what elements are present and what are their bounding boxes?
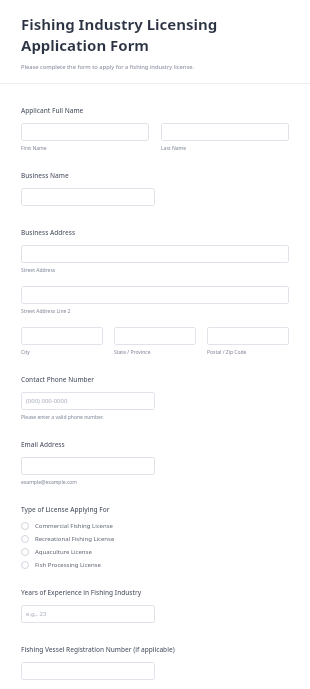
staticText: Fish Processing License — [35, 561, 101, 569]
staticText: Postal / Zip Code — [207, 349, 247, 356]
button[interactable]: (000) 000-0000 — [21, 392, 155, 410]
button[interactable]: Commercial Fishing License — [21, 519, 289, 532]
staticText: Type of License Applying For — [21, 505, 110, 514]
staticText: Email Address — [21, 440, 65, 449]
button[interactable] — [21, 286, 289, 304]
staticText: Street Address — [21, 267, 56, 274]
staticText: Aquaculture License — [35, 548, 92, 556]
staticText: City — [21, 349, 30, 356]
staticText: e.g., 23 — [26, 610, 47, 618]
staticText: Fishing Vessel Registration Number (if a… — [21, 645, 175, 654]
staticText: Commercial Fishing License — [35, 522, 113, 530]
staticText: Applicant Full Name — [21, 106, 84, 115]
staticText: Fishing Industry Licensing Application F… — [21, 14, 289, 56]
staticText: State / Province — [114, 349, 151, 356]
button[interactable]: Fish Processing License — [21, 558, 289, 571]
staticText: Business Name — [21, 171, 69, 180]
button[interactable] — [114, 327, 196, 345]
staticText: Recreational Fishing License — [35, 535, 115, 543]
staticText: Last Name — [161, 145, 187, 152]
button[interactable]: e.g., 23 — [21, 605, 155, 623]
staticText: example@example.com — [21, 479, 77, 486]
staticText: First Name — [21, 145, 47, 152]
button[interactable] — [161, 123, 289, 141]
staticText: Please enter a valid phone number. — [21, 414, 104, 421]
button[interactable] — [21, 327, 103, 345]
staticText: (000) 000-0000 — [26, 397, 68, 405]
staticText: Street Address Line 2 — [21, 308, 71, 315]
staticText: Business Address — [21, 228, 76, 237]
button[interactable] — [21, 662, 155, 680]
button[interactable] — [21, 188, 155, 206]
staticText: Contact Phone Number — [21, 375, 95, 384]
staticText: Please complete the form to apply for a … — [21, 63, 195, 71]
button[interactable] — [21, 457, 155, 475]
button[interactable] — [21, 123, 149, 141]
staticText: Years of Experience in Fishing Industry — [21, 588, 142, 597]
button[interactable] — [207, 327, 289, 345]
button[interactable]: Recreational Fishing License — [21, 532, 289, 545]
button[interactable] — [21, 245, 289, 263]
button[interactable]: Aquaculture License — [21, 545, 289, 558]
